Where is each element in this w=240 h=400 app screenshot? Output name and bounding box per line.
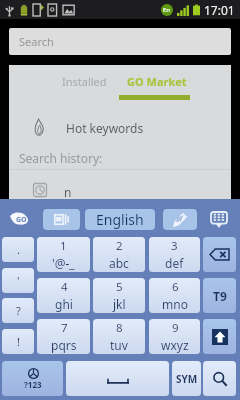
staticText: Installed — [62, 74, 107, 89]
button[interactable]: T9 — [203, 278, 236, 313]
staticText: 5 — [116, 279, 123, 295]
staticText: pqrs — [51, 337, 77, 353]
staticText: Search history: — [19, 150, 103, 166]
button[interactable]: 1 — [37, 237, 90, 272]
button[interactable]: Hide keyboard — [210, 211, 228, 228]
button[interactable]: 2 — [93, 237, 145, 272]
staticText: En — [163, 6, 171, 14]
staticText: English — [96, 210, 144, 229]
button[interactable]: 5 — [93, 278, 145, 313]
button[interactable]: Keyboard layout — [43, 209, 80, 230]
staticText: def — [165, 255, 184, 271]
staticText: 4 — [61, 279, 68, 295]
staticText: 7 — [61, 320, 68, 336]
button[interactable]: Backspace — [203, 237, 236, 272]
staticText: abc — [109, 255, 129, 271]
staticText: ?123 — [24, 379, 42, 390]
staticText: 3 — [171, 238, 178, 254]
button[interactable]: ! — [2, 329, 34, 354]
button[interactable]: ' — [2, 268, 34, 293]
button[interactable]: Hot keywords — [9, 107, 231, 137]
button[interactable]: Shift — [203, 319, 236, 354]
staticText: tuv — [110, 337, 128, 353]
staticText: 2 — [116, 238, 123, 254]
staticText: . — [17, 242, 20, 257]
staticText: 9 — [172, 320, 179, 336]
button[interactable]: ? — [2, 298, 34, 323]
button[interactable]: Handwriting — [163, 209, 197, 230]
button[interactable]: Installed — [48, 65, 120, 97]
staticText: 1 — [60, 238, 67, 254]
staticText: 17:01 — [204, 2, 235, 18]
button[interactable]: English — [85, 209, 155, 230]
button[interactable]: 4 — [37, 278, 90, 313]
staticText: ' — [17, 273, 20, 288]
button[interactable]: . — [2, 237, 34, 262]
button[interactable] — [66, 361, 169, 396]
button[interactable]: 7 — [37, 319, 90, 354]
staticText: 6 — [172, 279, 179, 295]
staticText: n — [64, 184, 72, 200]
staticText: Search — [19, 34, 54, 49]
button[interactable]: 3 — [149, 237, 200, 272]
button[interactable]: GO Market — [120, 65, 194, 97]
staticText: ? — [16, 303, 21, 318]
staticText: wxyz — [161, 337, 189, 353]
staticText: jkl — [113, 296, 126, 312]
staticText: mno — [162, 296, 188, 312]
button[interactable]: 9 — [149, 319, 200, 354]
button[interactable]: GO Keyboard menu — [10, 212, 30, 225]
button[interactable]: Search — [9, 28, 231, 55]
button[interactable]: n — [9, 170, 231, 199]
staticText: Hot keywords — [66, 120, 144, 136]
staticText: T9 — [213, 288, 227, 304]
staticText: ghi — [55, 296, 73, 312]
staticText: 8 — [116, 320, 123, 336]
staticText: '@-_ — [52, 255, 75, 271]
staticText: GO — [16, 215, 27, 225]
staticText: GO Market — [127, 74, 187, 89]
staticText: ! — [17, 334, 20, 349]
button[interactable]: Search — [203, 361, 236, 396]
button[interactable]: 6 — [149, 278, 200, 313]
staticText: SYM — [176, 372, 198, 386]
button[interactable]: 8 — [93, 319, 145, 354]
button[interactable]: SYM — [172, 361, 201, 396]
button[interactable]: Symbols — [2, 361, 63, 396]
